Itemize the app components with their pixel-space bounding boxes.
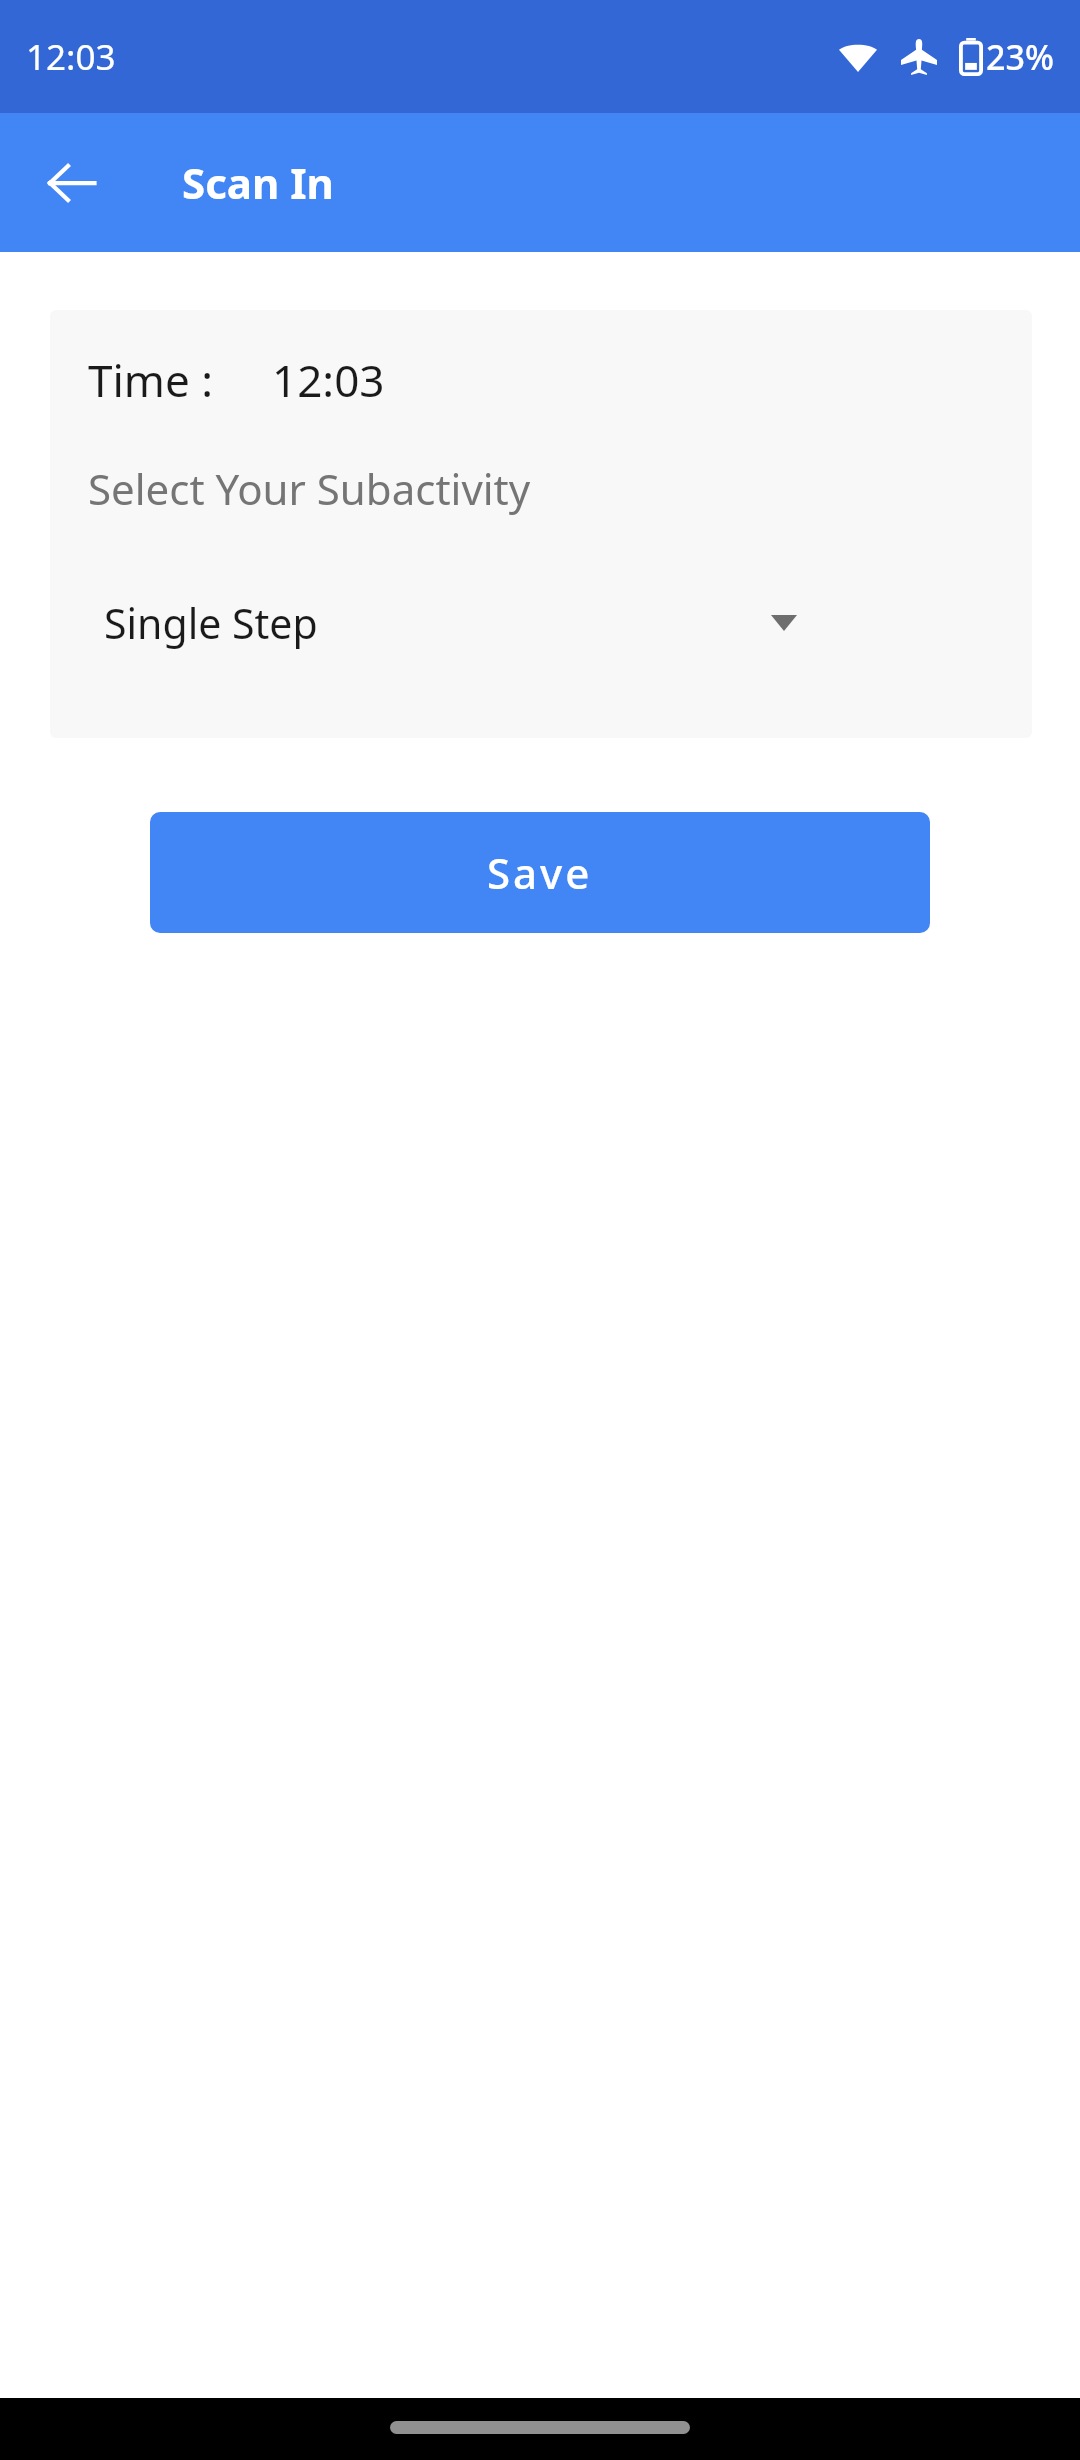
staticText: Scan In <box>182 154 334 211</box>
staticText: 23% <box>986 34 1054 80</box>
button[interactable]: Single Step <box>50 575 1032 671</box>
staticText: Single Step <box>104 595 318 651</box>
staticText: Save <box>487 844 593 901</box>
staticText: Select Your Subactivity <box>88 460 531 517</box>
button[interactable]: Back <box>28 139 116 227</box>
staticText: Time : <box>88 350 214 410</box>
staticText: 12:03 <box>26 33 116 81</box>
staticText: 12:03 <box>272 350 385 410</box>
button[interactable]: Save <box>150 812 930 933</box>
